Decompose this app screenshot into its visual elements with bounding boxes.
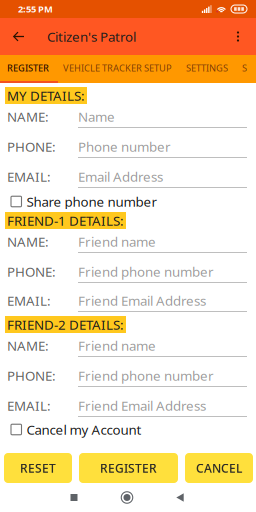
staticText: VEHICLE TRACKER SETUP (63, 62, 172, 74)
button[interactable]: Share phone number (0, 194, 256, 209)
button[interactable]: SETTINGS (179, 55, 235, 81)
staticText: PHONE: (7, 263, 56, 280)
staticText: Friend phone number (78, 367, 214, 384)
button[interactable]: RESET (4, 453, 72, 483)
staticText: RESET (20, 460, 56, 476)
staticText: Friend phone number (78, 263, 214, 280)
staticText: Friend name (78, 337, 156, 354)
button[interactable]: CANCEL (185, 453, 253, 483)
staticText: Citizen's Patrol (47, 28, 136, 45)
staticText: Name (78, 108, 115, 125)
button[interactable]: Back (0, 18, 37, 55)
staticText: MY DETAILS: (7, 87, 85, 104)
staticText: Friend name (78, 233, 156, 250)
staticText: NAME: (7, 233, 49, 250)
button[interactable]: More options (223, 18, 253, 55)
staticText: EMAIL: (7, 397, 51, 414)
button[interactable]: VEHICLE TRACKER SETUP (56, 55, 179, 81)
staticText: 2:55 PM (18, 3, 53, 15)
staticText: CANCEL (196, 460, 242, 476)
staticText: Friend Email Address (78, 292, 206, 309)
staticText: Cancel my Account (26, 421, 141, 438)
button[interactable]: REGISTER (0, 55, 56, 81)
staticText: NAME: (7, 108, 49, 125)
staticText: Friend Email Address (78, 397, 206, 414)
staticText: SETTINGS (186, 62, 228, 74)
staticText: EMAIL: (7, 168, 51, 185)
button[interactable]: Home (100, 483, 154, 512)
button[interactable]: Recent apps (48, 483, 100, 512)
staticText: REGISTER (100, 460, 157, 476)
staticText: REGISTER (7, 62, 49, 74)
button[interactable]: S (235, 55, 254, 81)
staticText: FRIEND-2 DETAILS: (7, 316, 124, 333)
staticText: S (242, 62, 247, 74)
button[interactable]: Cancel my Account (0, 422, 256, 437)
staticText: Phone number (78, 138, 171, 155)
staticText: NAME: (7, 337, 49, 354)
staticText: Share phone number (26, 193, 157, 210)
button[interactable]: Back (154, 483, 206, 512)
staticText: Email Address (78, 168, 163, 185)
staticText: EMAIL: (7, 292, 51, 309)
staticText: FRIEND-1 DETAILS: (7, 212, 124, 229)
staticText: PHONE: (7, 367, 56, 384)
button[interactable]: REGISTER (79, 453, 178, 483)
staticText: PHONE: (7, 138, 56, 155)
